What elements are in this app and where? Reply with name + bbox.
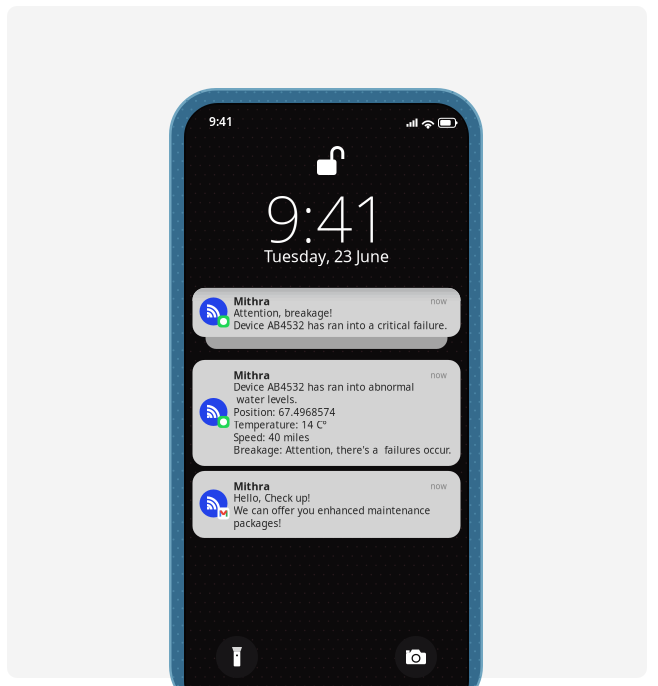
staticText: Attention, breakage! <box>233 306 332 320</box>
staticText: Mithra <box>233 294 269 308</box>
staticText: now <box>430 481 446 492</box>
staticText: We can offer you enhanced maintenance <box>233 504 430 517</box>
staticText: 9:41 <box>265 174 388 261</box>
staticText: packages! <box>233 516 281 530</box>
staticText: now <box>430 370 446 381</box>
staticText: Mithra <box>233 479 269 493</box>
staticText: Position: 67.4968574 <box>233 405 335 419</box>
button[interactable]: Camera <box>395 636 437 678</box>
staticText: Temperature: 14 C° <box>233 418 326 431</box>
staticText: water levels. <box>233 393 297 406</box>
staticText: Device AB4532 has ran into abnormal <box>233 380 414 394</box>
button[interactable]: Mithra <box>192 360 460 466</box>
staticText: Device AB4532 has ran into a critical fa… <box>233 319 447 332</box>
staticText: Tuesday, 23 June <box>264 245 389 267</box>
button[interactable]: Mithra <box>192 471 460 538</box>
staticText: now <box>430 296 446 307</box>
button[interactable]: Flashlight <box>216 636 258 678</box>
staticText: Hello, Check up! <box>233 491 310 505</box>
staticText: Breakage: Attention, there's a failures … <box>233 443 451 457</box>
staticText: Mithra <box>233 368 269 382</box>
staticText: 9:41 <box>209 113 233 129</box>
staticText: Speed: 40 miles <box>233 430 309 444</box>
button[interactable]: Mithra <box>192 288 460 337</box>
